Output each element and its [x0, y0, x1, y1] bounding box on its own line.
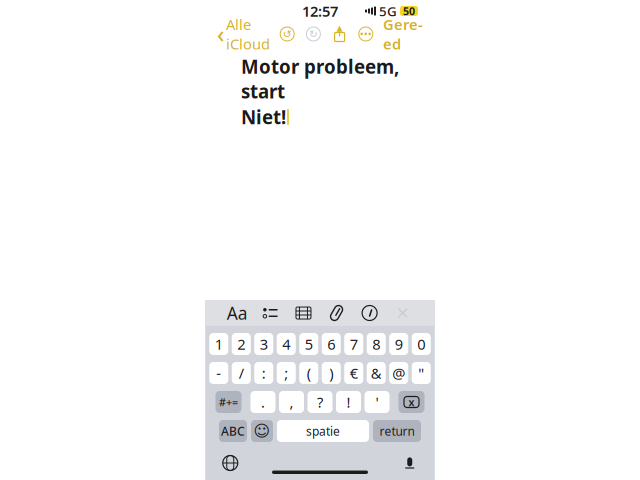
button[interactable]: 1 [209, 333, 228, 355]
button[interactable]: ' [364, 391, 389, 413]
button[interactable]: . [250, 391, 275, 413]
staticText: ; [284, 363, 288, 383]
button[interactable]: 5 [299, 333, 318, 355]
button[interactable]: € [344, 362, 363, 384]
staticText: 9 [395, 334, 403, 354]
button[interactable]: Undo [278, 25, 296, 43]
staticText: 5G [379, 2, 397, 20]
staticText: 2 [237, 334, 245, 354]
button[interactable]: spatie [277, 420, 369, 442]
button[interactable]: 9 [389, 333, 408, 355]
button[interactable]: 4 [277, 333, 296, 355]
staticText: ↺ [283, 28, 292, 40]
button[interactable]: @ [389, 362, 408, 384]
button[interactable]: Markup [359, 303, 381, 323]
button[interactable]: 0 [412, 333, 431, 355]
staticText: 6 [327, 334, 335, 354]
button[interactable]: ‹ [217, 14, 270, 53]
staticText: 4 [282, 334, 290, 354]
staticText: ••• [360, 27, 372, 41]
staticText: 8 [372, 334, 380, 354]
button[interactable]: Change keyboard [221, 454, 239, 472]
button[interactable]: ; [277, 362, 296, 384]
button[interactable]: 2 [232, 333, 251, 355]
staticText: ABC [221, 423, 245, 439]
staticText: 3 [260, 334, 268, 354]
staticText: Alle iCloud [226, 14, 270, 53]
staticText: ☺ [253, 422, 270, 440]
button[interactable]: " [412, 362, 431, 384]
staticText: Motor probleem, start [241, 54, 399, 104]
button[interactable]: 7 [344, 333, 363, 355]
staticText: & [371, 363, 382, 383]
button[interactable]: Text format [226, 303, 248, 323]
staticText: Niet! [241, 105, 286, 129]
staticText: : [262, 363, 266, 383]
button[interactable]: ! [336, 391, 361, 413]
button[interactable]: Attach [325, 303, 347, 323]
button[interactable]: Close keyboard [392, 303, 414, 323]
button[interactable]: 8 [367, 333, 386, 355]
staticText: , [289, 392, 293, 412]
staticText: ? [317, 392, 323, 412]
button[interactable]: ( [299, 362, 318, 384]
staticText: " [418, 363, 424, 383]
button[interactable]: Table [292, 303, 314, 323]
staticText: #+= [219, 395, 238, 409]
staticText: @ [392, 363, 405, 383]
staticText: ! [346, 392, 350, 412]
button[interactable]: 3 [254, 333, 273, 355]
button[interactable]: & [367, 362, 386, 384]
staticText: Aa [227, 301, 248, 324]
button[interactable]: Emoji [251, 420, 273, 442]
staticText: 50 [403, 4, 415, 18]
staticText: ) [329, 363, 333, 383]
button[interactable]: return [373, 420, 421, 442]
button[interactable]: Redo [304, 25, 322, 43]
staticText: 1 [215, 334, 223, 354]
staticText: ▲ [337, 23, 343, 33]
button[interactable]: , [279, 391, 304, 413]
button[interactable]: 6 [322, 333, 341, 355]
button[interactable]: / [232, 362, 251, 384]
staticText: / [239, 363, 244, 383]
staticText: ( [307, 363, 311, 383]
button[interactable]: Checklist [259, 303, 281, 323]
button[interactable]: Gereed [383, 14, 423, 53]
button[interactable]: More [357, 25, 375, 43]
staticText: . [261, 392, 265, 412]
staticText: - [216, 363, 221, 383]
button[interactable]: Delete [398, 391, 424, 413]
staticText: Gereed [383, 14, 423, 53]
button[interactable]: : [254, 362, 273, 384]
staticText: 5 [305, 334, 313, 354]
button[interactable]: Dictate [401, 455, 419, 471]
staticText: 12:57 [302, 1, 338, 21]
staticText: ↻ [309, 28, 318, 40]
staticText: € [350, 363, 358, 383]
staticText: ' [375, 392, 378, 412]
staticText: x [408, 395, 414, 409]
staticText: 7 [350, 334, 358, 354]
button[interactable]: ? [307, 391, 332, 413]
button[interactable]: - [209, 362, 228, 384]
staticText: spatie [306, 423, 340, 439]
staticText: ‹ [217, 19, 224, 49]
staticText: return [379, 423, 414, 439]
button[interactable]: ) [322, 362, 341, 384]
staticText: 0 [417, 334, 425, 354]
button[interactable]: ABC [219, 420, 247, 442]
button[interactable]: #+= [215, 391, 241, 413]
button[interactable]: Share [331, 25, 349, 43]
